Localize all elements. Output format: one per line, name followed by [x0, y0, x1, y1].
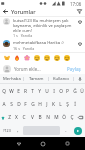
staticText: R: [24, 88, 27, 95]
button[interactable]: E: [15, 84, 22, 98]
staticText: Kullanıcı: [53, 76, 70, 82]
staticText: 1 s Yanıtla: [13, 33, 33, 38]
button[interactable]: T: [29, 84, 36, 98]
button[interactable]: Z: [6, 111, 13, 124]
staticText: Ü: [80, 88, 84, 95]
staticText: W: [9, 88, 14, 95]
button[interactable]: D: [15, 98, 22, 111]
button[interactable]: Voice input: [74, 74, 85, 83]
staticText: mehmetakifbasa Harika :): [13, 40, 64, 46]
staticText: 16 s Yanıtla: [13, 46, 35, 51]
button[interactable]: Kullanıcı: [49, 74, 73, 83]
staticText: kutsal123 Bu muhteşem şok kaynama, etkin…: [13, 18, 74, 33]
staticText: K: [52, 101, 55, 108]
staticText: .: [65, 127, 67, 134]
button[interactable]: Emoji: [42, 53, 52, 63]
button[interactable]: Tamam: [24, 74, 48, 83]
staticText: Yorum ekle...: [14, 66, 41, 72]
staticText: Ş: [66, 101, 69, 108]
staticText: Ğ: [73, 88, 77, 95]
staticText: P: [66, 88, 69, 95]
button[interactable]: ?123: [0, 124, 13, 137]
button[interactable]: kutsal123 Bu muhteşem şok kaynama, etkin…: [0, 17, 85, 39]
staticText: V: [31, 114, 34, 121]
button[interactable]: K: [50, 98, 57, 111]
button[interactable]: Emoji: [2, 53, 12, 63]
staticText: T: [31, 88, 34, 95]
button[interactable]: Ö: [60, 111, 68, 124]
staticText: N: [46, 114, 50, 121]
button[interactable]: Emoji: [12, 53, 22, 63]
button[interactable]: Y: [36, 84, 43, 98]
button[interactable]: Emoji: [32, 53, 42, 63]
staticText: Ç: [70, 114, 74, 121]
staticText: D: [17, 101, 21, 108]
button[interactable]: Shift: [0, 111, 6, 124]
button[interactable]: Ş: [64, 98, 71, 111]
button[interactable]: Emoji: [62, 53, 72, 63]
button[interactable]: P: [64, 84, 71, 98]
button[interactable]: A: [0, 98, 8, 111]
button[interactable]: Merhaba: [0, 74, 23, 83]
button[interactable]: Like: [76, 40, 83, 47]
staticText: Tamam: [29, 76, 44, 82]
button[interactable]: F: [22, 98, 29, 111]
button[interactable]: İ: [71, 98, 78, 111]
button[interactable]: Backspace: [76, 111, 85, 124]
button[interactable]: Recents: [61, 137, 74, 150]
staticText: A: [2, 101, 6, 108]
button[interactable]: Emoji: [22, 53, 32, 63]
staticText: Merhaba: [3, 76, 21, 82]
staticText: S: [10, 101, 13, 108]
staticText: X: [15, 114, 18, 121]
button[interactable]: N: [44, 111, 52, 124]
staticText: O: [59, 88, 63, 95]
button[interactable]: Paylaş: [66, 65, 82, 73]
staticText: B: [38, 114, 42, 121]
staticText: Y: [38, 88, 41, 95]
button[interactable]: J: [43, 98, 50, 111]
staticText: L: [59, 101, 62, 108]
staticText: Yorumlar: [11, 8, 36, 16]
staticText: ?123: [3, 128, 11, 133]
button[interactable]: O: [57, 84, 64, 98]
button[interactable]: Home: [36, 137, 49, 150]
button[interactable]: Like: [76, 18, 83, 25]
button[interactable]: L: [57, 98, 64, 111]
staticText: ,: [17, 127, 19, 134]
button[interactable]: .: [61, 124, 70, 137]
button[interactable]: mehmetakifbasa Harika :): [0, 39, 85, 52]
staticText: J: [46, 101, 48, 108]
button[interactable]: X: [13, 111, 20, 124]
staticText: M: [54, 114, 59, 121]
button[interactable]: U: [43, 84, 50, 98]
staticText: U: [45, 88, 49, 95]
button[interactable]: Back: [12, 137, 25, 150]
button[interactable]: H: [36, 98, 43, 111]
staticText: Z: [8, 114, 11, 121]
button[interactable]: R: [22, 84, 29, 98]
staticText: Ö: [62, 114, 66, 121]
button[interactable]: Filter: [74, 7, 85, 16]
button[interactable]: S: [8, 98, 15, 111]
button[interactable]: Send: [74, 127, 82, 135]
staticText: F: [24, 101, 27, 108]
button[interactable]: M: [52, 111, 60, 124]
button[interactable]: B: [36, 111, 44, 124]
button[interactable]: Back: [0, 7, 11, 16]
staticText: E: [17, 88, 20, 95]
button[interactable]: V: [28, 111, 36, 124]
button[interactable]: Q: [0, 84, 8, 98]
button[interactable]: C: [20, 111, 28, 124]
button[interactable]: I: [50, 84, 57, 98]
button[interactable]: Ü: [78, 84, 85, 98]
button[interactable]: G: [29, 98, 36, 111]
button[interactable]: Ç: [68, 111, 76, 124]
staticText: 17:06: [70, 1, 82, 7]
staticText: C: [22, 114, 26, 121]
button[interactable]: ,: [13, 124, 22, 137]
button[interactable]: Emoji: [52, 53, 62, 63]
button[interactable]: Ğ: [71, 84, 78, 98]
button[interactable]: W: [8, 84, 15, 98]
